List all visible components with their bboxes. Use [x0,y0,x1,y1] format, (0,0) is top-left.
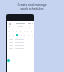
staticText: Create and manage work schedules [17,3,47,11]
button[interactable]: Add shift [7,59,10,62]
